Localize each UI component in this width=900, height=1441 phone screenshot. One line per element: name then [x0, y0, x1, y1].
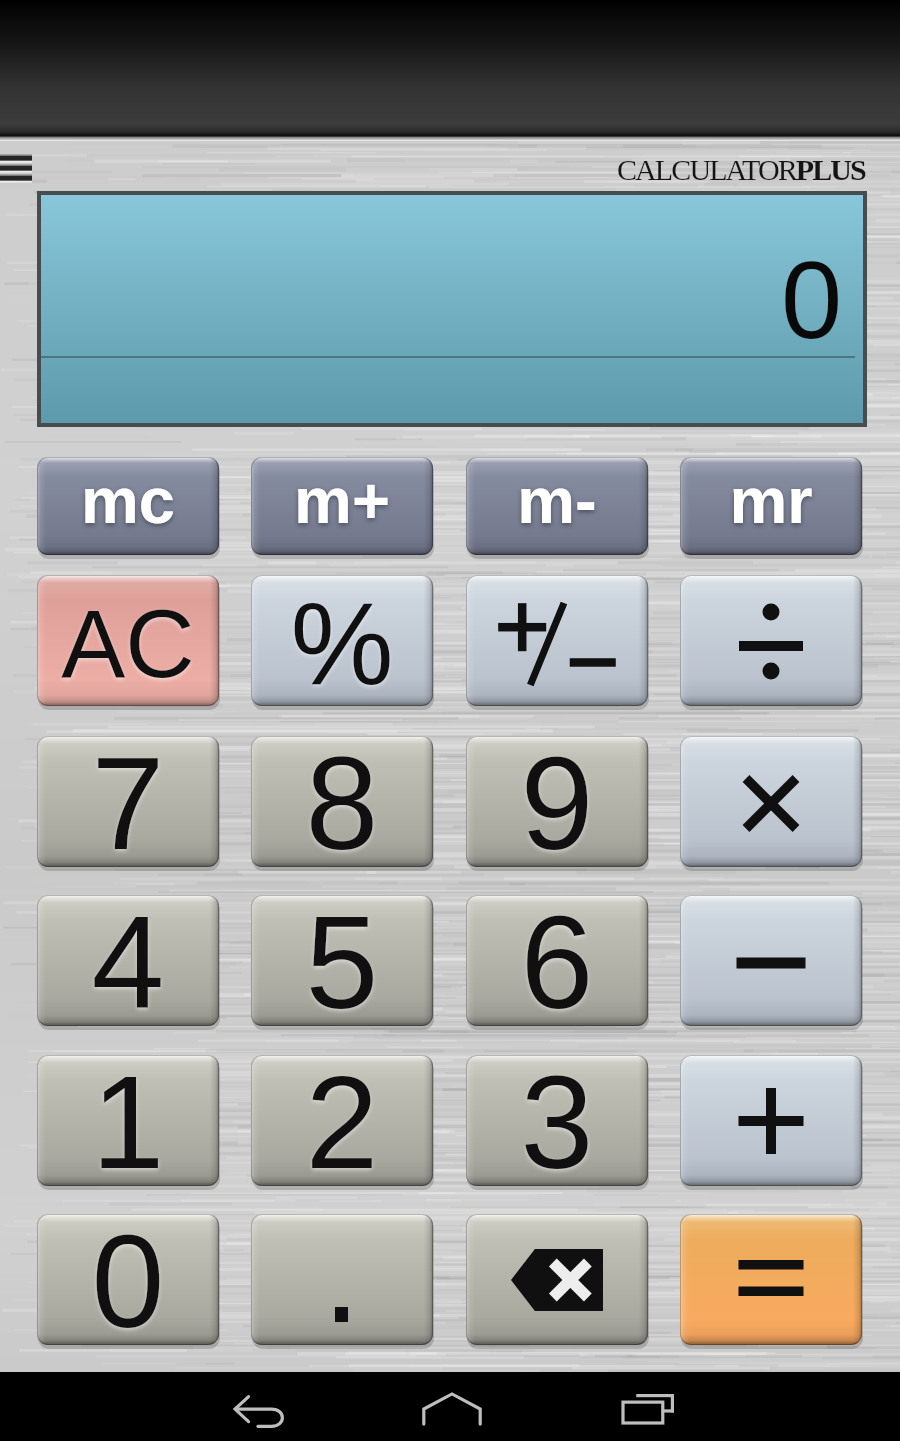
button[interactable]: Backspace	[466, 1214, 648, 1345]
button[interactable]: 3	[466, 1055, 648, 1186]
button[interactable]: Multiply	[680, 736, 862, 867]
button[interactable]: Plus	[680, 1055, 862, 1186]
button[interactable]: Plus minus	[466, 575, 648, 706]
button[interactable]: 7	[37, 736, 219, 867]
staticText: 9	[466, 736, 648, 861]
staticText: 0	[37, 1214, 219, 1339]
button[interactable]: Divide	[680, 575, 862, 706]
button[interactable]: 6	[466, 895, 648, 1026]
staticText: mc	[37, 464, 219, 537]
button[interactable]: m+	[251, 457, 433, 555]
button[interactable]: Equals	[680, 1214, 862, 1345]
button[interactable]: mr	[680, 457, 862, 555]
button[interactable]: 4	[37, 895, 219, 1026]
button[interactable]: Home	[382, 1374, 522, 1441]
button[interactable]: Decimal point	[251, 1214, 433, 1345]
staticText: 6	[466, 895, 648, 1020]
button[interactable]: AC	[37, 575, 219, 706]
staticText: 5	[251, 895, 433, 1020]
button[interactable]: mc	[37, 457, 219, 555]
staticText: mr	[680, 464, 862, 537]
staticText: 4	[37, 895, 219, 1020]
staticText: CALCULATORPLUS	[617, 153, 865, 186]
button[interactable]: 5	[251, 895, 433, 1026]
staticText: 3	[466, 1055, 648, 1180]
button[interactable]: 1	[37, 1055, 219, 1186]
button[interactable]: 0	[37, 1214, 219, 1345]
button[interactable]: Back	[190, 1375, 330, 1441]
staticText: 8	[251, 736, 433, 861]
button[interactable]: 2	[251, 1055, 433, 1186]
staticText: 2	[251, 1055, 433, 1180]
staticText: AC	[37, 590, 219, 697]
button[interactable]: Menu	[0, 146, 46, 194]
staticText: 1	[37, 1055, 219, 1180]
button[interactable]: Minus	[680, 895, 862, 1026]
button[interactable]: 9	[466, 736, 648, 867]
staticText: 7	[37, 736, 219, 861]
button[interactable]: Recents	[578, 1374, 718, 1441]
staticText: m+	[251, 464, 433, 537]
button[interactable]: m-	[466, 457, 648, 555]
staticText: %	[251, 579, 433, 706]
staticText: m-	[466, 464, 648, 537]
staticText: 0	[781, 238, 843, 361]
button[interactable]: %	[251, 575, 433, 706]
button[interactable]: 8	[251, 736, 433, 867]
